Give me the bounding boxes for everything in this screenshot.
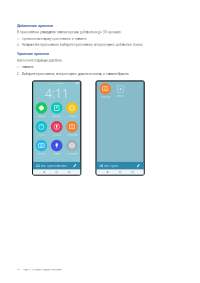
button[interactable]: Телефон	[34, 102, 49, 117]
button[interactable]: Домой	[119, 170, 122, 173]
staticText: 4G	[74, 82, 76, 84]
staticText: Контакты	[52, 114, 61, 117]
staticText: 4:11	[45, 85, 69, 102]
staticText: Добавление ярлыков	[17, 23, 53, 28]
staticText: AM	[55, 102, 58, 104]
staticText: Все приложения	[41, 164, 67, 168]
button[interactable]: Все приложения	[36, 164, 67, 168]
staticText: 1. Нажмите	[17, 65, 33, 69]
button[interactable]: Назад	[106, 170, 109, 173]
staticText: Добавить	[116, 94, 124, 97]
staticText: ПН, 24 АПРЕЛЯ	[50, 82, 63, 85]
staticText: Галерея	[53, 152, 60, 155]
button[interactable]: Сообщения	[98, 83, 113, 98]
staticText: Часы	[38, 133, 44, 136]
staticText: 2. На экране Все приложения выберите при…	[17, 43, 143, 46]
button[interactable]: Контакты	[49, 102, 64, 117]
button[interactable]: Интернет	[64, 102, 80, 117]
staticText: Глава 3. Основные задачи и настройки	[23, 268, 61, 271]
staticText: 1. Прикоснитесь к экрану приложения и на…	[17, 37, 86, 41]
staticText: 44	[17, 268, 19, 271]
button[interactable]: Недавние	[68, 170, 71, 173]
staticText: Настройки	[67, 152, 77, 155]
button[interactable]: Музыка	[49, 121, 64, 136]
button[interactable]: Настройки	[64, 140, 80, 155]
staticText: Камера	[38, 152, 45, 155]
staticText: Удаление ярлыков	[17, 52, 49, 56]
staticText: В приложении размещаются важные ярлыки д…	[17, 30, 122, 34]
staticText: 2. Выберите приложение, которое нужно уд…	[17, 72, 129, 76]
staticText: Сообщения	[67, 133, 77, 136]
staticText: Выполните следующие действия.	[17, 59, 63, 62]
button[interactable]: Камера	[34, 140, 49, 155]
staticText: Интернет	[67, 114, 76, 117]
staticText: Все прил.	[104, 164, 119, 168]
button[interactable]: Часы	[34, 121, 49, 136]
button[interactable]: Назад	[43, 170, 46, 173]
staticText: Музыка	[53, 133, 61, 136]
button[interactable]: Сообщения	[64, 121, 80, 136]
staticText: Сообщения	[100, 95, 110, 98]
button[interactable]: Домой	[55, 170, 58, 173]
button[interactable]: Изменить	[73, 164, 77, 168]
button[interactable]: Все прил.	[100, 164, 119, 168]
staticText: Телефон	[37, 114, 45, 117]
button[interactable]: Галерея	[49, 140, 64, 155]
button[interactable]: Добавить	[113, 84, 128, 97]
button[interactable]: Недавние	[131, 170, 134, 173]
button[interactable]: Изменить	[136, 164, 140, 168]
